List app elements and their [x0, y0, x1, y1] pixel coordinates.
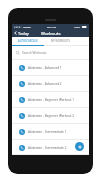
button[interactable]: Abdomen - Advanced 1 — [12, 60, 89, 76]
staticText: 9:41 AM — [47, 25, 57, 28]
button[interactable]: AUTOSCHEDULE — [12, 37, 44, 45]
staticText: Abdomen - Intermediate 2 — [28, 146, 67, 150]
staticText: AUTOSCHEDULE — [18, 39, 38, 43]
staticText: Abdomen - Beginner Workout 2 — [28, 114, 75, 118]
staticText: MY WORKOUTS — [51, 39, 70, 43]
staticText: Workouts — [41, 30, 61, 36]
button[interactable]: Abdomen - Advanced 2 — [12, 76, 89, 92]
staticText: Abdomen - Advanced 1 — [28, 66, 62, 70]
button[interactable]: Abdomen - Intermediate 2 — [12, 140, 89, 155]
button[interactable]: Add workout — [75, 142, 84, 151]
button[interactable]: MY WORKOUTS — [44, 37, 76, 45]
staticText: Abdomen - Intermediate 1 — [28, 130, 67, 134]
staticText: Abdomen - Beginner Workout 1 — [28, 98, 75, 102]
button[interactable]: Abdomen - Beginner Workout 1 — [12, 92, 89, 108]
button[interactable]: Today — [12, 29, 30, 37]
staticText: Abdomen - Advanced 2 — [28, 82, 62, 86]
button[interactable]: Abdomen - Intermediate 1 — [12, 124, 89, 140]
staticText: Carrier — [23, 25, 31, 28]
staticText: Today — [18, 31, 29, 36]
button[interactable]: Abdomen - Beginner Workout 2 — [12, 108, 89, 124]
staticText: Search Workouts — [22, 51, 47, 55]
staticText: 100% — [74, 25, 81, 28]
